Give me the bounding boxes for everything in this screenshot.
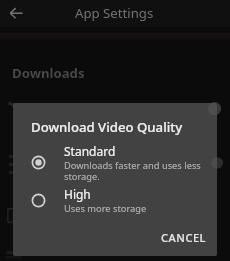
staticText: Standard <box>64 143 116 159</box>
button[interactable]: CANCEL <box>153 225 215 250</box>
button[interactable]: Standard <box>13 143 217 183</box>
staticText: App Settings <box>75 4 154 22</box>
staticText: Download Video Quality <box>31 118 183 136</box>
staticText: Uses more storage <box>64 202 147 215</box>
button[interactable]: High <box>13 186 217 215</box>
staticText: Downloads faster and uses less storage. <box>64 159 201 183</box>
staticText: High <box>64 186 91 202</box>
staticText: Downloads <box>12 64 85 82</box>
staticText: CANCEL <box>161 230 207 245</box>
button[interactable]: Back <box>4 1 28 25</box>
